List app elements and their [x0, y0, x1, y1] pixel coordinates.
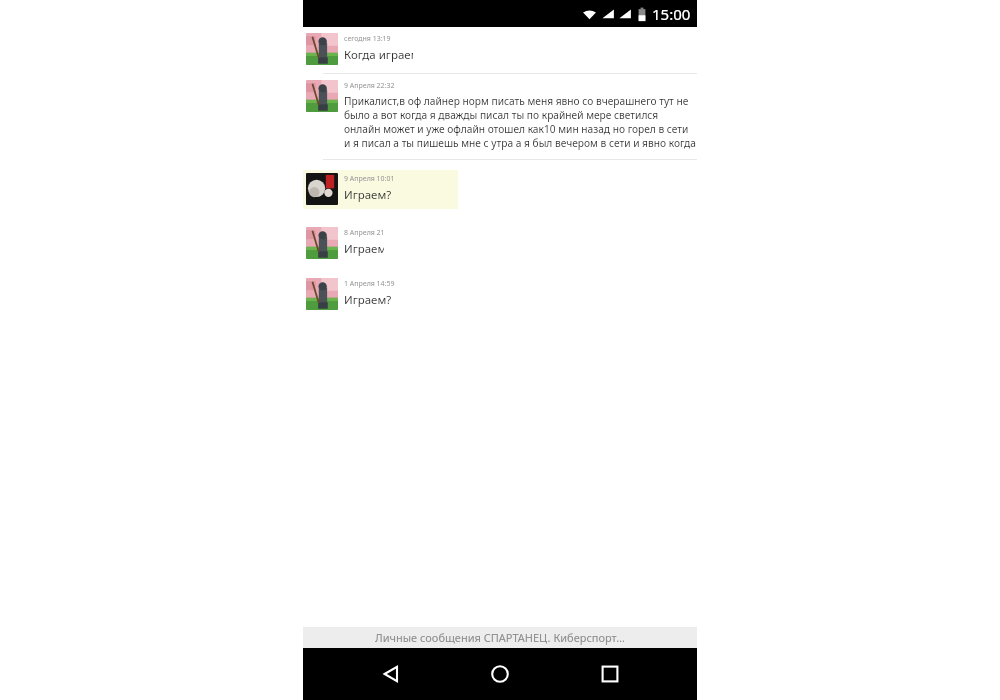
staticText: 1 Апреля 14:59 [344, 279, 395, 289]
button[interactable]: сегодня 13:19 [303, 30, 413, 69]
button[interactable]: 9 Апреля 10:01 [303, 170, 458, 209]
staticText: Когда играем? [344, 47, 413, 63]
button[interactable]: 9 Апреля 22:32 [303, 77, 697, 154]
staticText: сегодня 13:19 [344, 34, 391, 44]
staticText: Прикалист,в оф лайнер норм писать меня я… [344, 94, 696, 150]
button[interactable]: Home [478, 652, 522, 696]
staticText: 15:00 [652, 4, 691, 24]
staticText: 9 Апреля 10:01 [344, 174, 395, 184]
staticText: Играем? [344, 241, 384, 257]
button[interactable]: Личные сообщения СПАРТАНЕЦ. Киберспорт… [303, 627, 697, 648]
staticText: 9 Апреля 22:32 [344, 81, 395, 91]
button[interactable]: 1 Апреля 14:59 [303, 275, 398, 314]
button[interactable]: Recent apps [588, 652, 632, 696]
button[interactable]: 8 Апреля 21:50 [303, 224, 384, 263]
staticText: 8 Апреля 21:50 [344, 228, 384, 238]
button[interactable]: Back [369, 652, 413, 696]
staticText: Играем? [344, 292, 392, 308]
staticText: Играем? [344, 187, 392, 203]
staticText: Личные сообщения СПАРТАНЕЦ. Киберспорт… [375, 630, 625, 645]
